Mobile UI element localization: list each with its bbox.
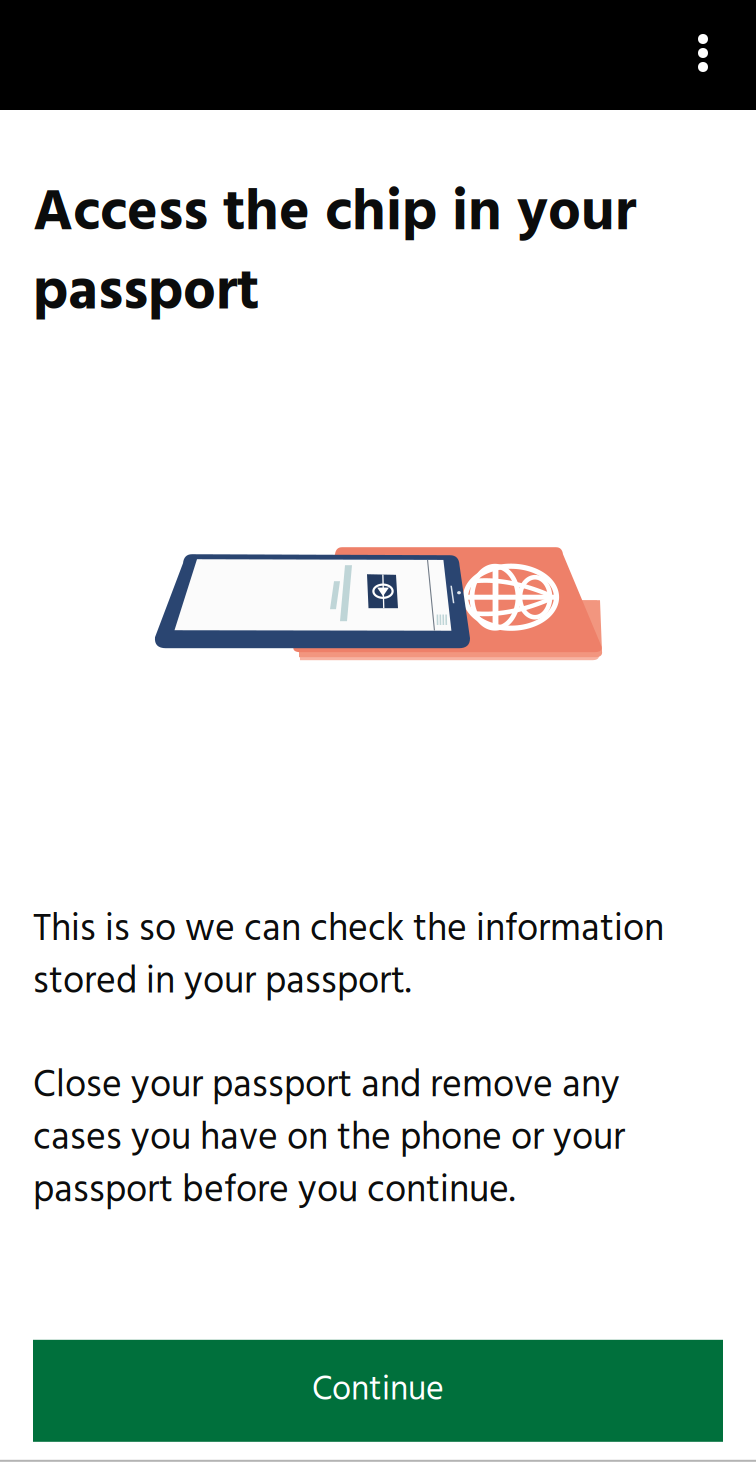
staticText: Access the chip in your passport (33, 168, 636, 340)
button[interactable]: Continue (33, 1340, 723, 1442)
staticText: Continue (312, 1364, 444, 1418)
staticText: Close your passport and remove any cases… (33, 1056, 625, 1222)
button[interactable]: More options (650, 0, 756, 110)
staticText: This is so we can check the information … (33, 900, 664, 1013)
